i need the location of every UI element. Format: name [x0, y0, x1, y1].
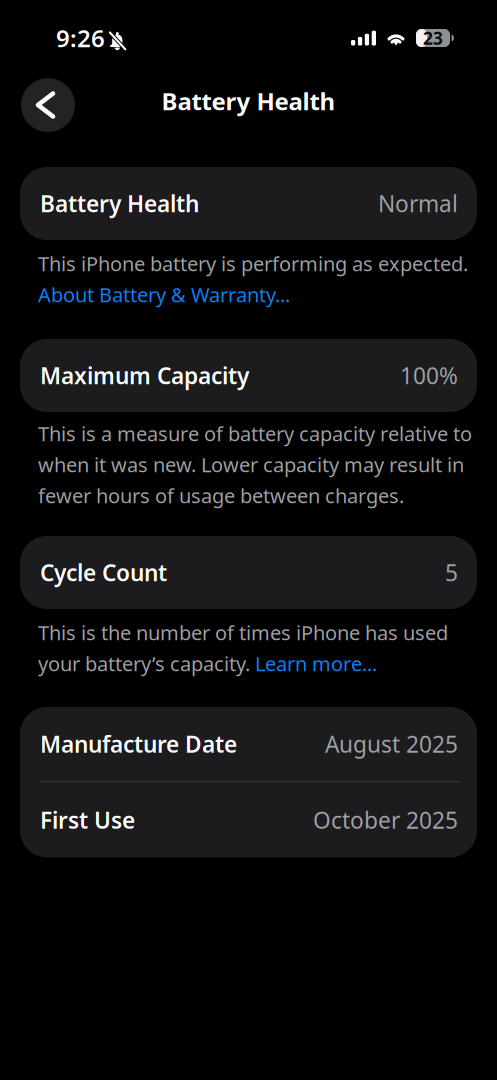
staticText: This is a measure of battery capacity re…	[38, 420, 472, 447]
staticText: 9:26	[56, 22, 105, 54]
staticText: Normal	[378, 188, 458, 218]
staticText: Maximum Capacity	[40, 360, 249, 390]
staticText: Manufacture Date	[40, 729, 237, 759]
button[interactable]: Cycle Count	[20, 536, 477, 609]
button[interactable]: Learn more...	[255, 650, 377, 677]
button[interactable]: Battery Health	[20, 167, 477, 240]
staticText: October 2025	[313, 805, 458, 835]
button[interactable]: Maximum Capacity	[20, 339, 477, 412]
staticText: when it was new. Lower capacity may resu…	[38, 451, 464, 478]
staticText: This iPhone battery is performing as exp…	[38, 250, 468, 277]
staticText: 5	[445, 557, 458, 587]
staticText: August 2025	[325, 729, 458, 759]
button[interactable]: First Use	[20, 782, 477, 857]
staticText: Battery Health	[161, 85, 335, 117]
staticText: First Use	[40, 805, 135, 835]
staticText: Battery Health	[40, 188, 199, 218]
staticText: About Battery & Warranty...	[38, 281, 290, 308]
staticText: 23	[423, 26, 443, 49]
button[interactable]: Manufacture Date	[20, 707, 477, 781]
staticText: your battery’s capacity.	[38, 650, 255, 677]
staticText: Learn more...	[255, 650, 377, 677]
button[interactable]: Back	[21, 78, 75, 132]
staticText: fewer hours of usage between charges.	[38, 482, 404, 509]
staticText: This is the number of times iPhone has u…	[38, 619, 448, 646]
staticText: 100%	[400, 360, 458, 390]
button[interactable]: About Battery & Warranty...	[38, 279, 290, 310]
staticText: Cycle Count	[40, 557, 167, 587]
